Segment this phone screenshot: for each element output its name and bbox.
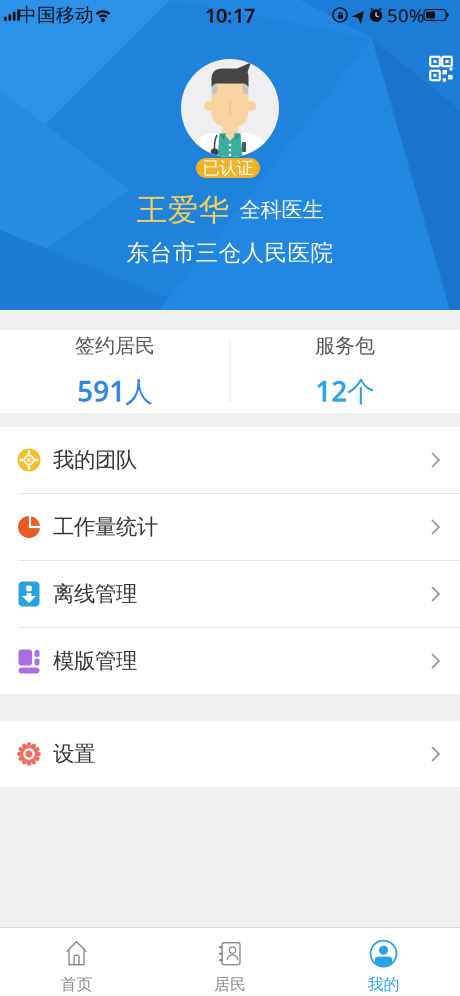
button[interactable]: 首页 — [0, 928, 153, 996]
staticText: 王爱华 — [136, 191, 229, 229]
staticText: 居民 — [214, 975, 246, 994]
button[interactable]: 设置 — [0, 721, 460, 787]
staticText: 工作量统计 — [53, 514, 158, 540]
staticText: 我的团队 — [53, 447, 137, 473]
button[interactable]: 服务包 — [230, 330, 459, 413]
button[interactable]: 居民 — [153, 928, 307, 996]
button[interactable]: 离线管理 — [0, 561, 460, 627]
button[interactable]: 工作量统计 — [0, 494, 460, 560]
staticText: 设置 — [53, 741, 95, 767]
staticText: 签约居民 — [75, 334, 155, 358]
staticText: 中国移动 — [18, 3, 94, 26]
button[interactable]: 我的 — [307, 928, 460, 996]
button[interactable]: 模版管理 — [0, 628, 460, 694]
staticText: 10:17 — [205, 2, 255, 28]
button[interactable]: 已认证 — [196, 158, 260, 178]
staticText: 东台市三仓人民医院 — [126, 239, 333, 267]
staticText: 50% — [387, 3, 425, 27]
staticText: 12个 — [315, 372, 375, 409]
button[interactable]: 二维码 — [429, 56, 452, 84]
staticText: 离线管理 — [53, 581, 137, 607]
staticText: 首页 — [60, 975, 92, 994]
staticText: 已认证 — [202, 157, 253, 179]
button[interactable]: 签约居民 — [0, 330, 229, 413]
staticText: 模版管理 — [53, 648, 137, 674]
staticText: 全科医生 — [239, 197, 323, 223]
staticText: 591人 — [77, 372, 153, 409]
staticText: 服务包 — [315, 334, 375, 358]
button[interactable]: 我的团队 — [0, 427, 460, 493]
staticText: 我的 — [367, 975, 399, 994]
